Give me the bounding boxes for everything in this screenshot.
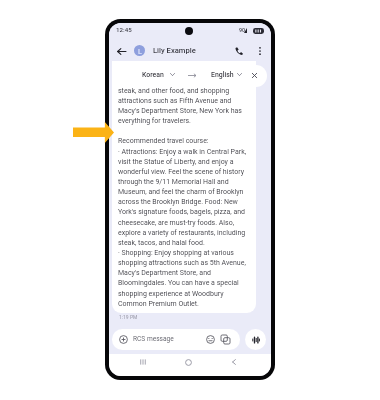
staticText: Macy's Department Store, New York has bbox=[118, 107, 242, 115]
button[interactable]: Voice message bbox=[245, 329, 266, 350]
staticText: Museum, and feel the charm of Brooklyn bbox=[118, 188, 244, 196]
button[interactable]: Home bbox=[178, 352, 198, 372]
staticText: shopping attractions such as 5th Avenue, bbox=[118, 259, 246, 267]
staticText: · Shopping: Enjoy shopping at various bbox=[118, 249, 234, 257]
button[interactable]: Gallery bbox=[221, 335, 231, 345]
button[interactable]: Back bbox=[224, 352, 244, 372]
button[interactable]: More options bbox=[253, 44, 267, 58]
button[interactable]: Lily Example bbox=[153, 46, 196, 55]
button[interactable] bbox=[113, 65, 267, 87]
staticText: visit the Statue of Liberty, and enjoy a bbox=[118, 158, 234, 166]
button[interactable]: Close translation bbox=[249, 70, 260, 81]
button[interactable]: Recent apps bbox=[133, 352, 153, 372]
button[interactable]: Back bbox=[115, 45, 128, 58]
staticText: Recommended travel course: bbox=[118, 137, 209, 145]
staticText: everything for travelers. bbox=[118, 117, 191, 125]
staticText: L bbox=[138, 47, 142, 55]
staticText: through the 9/11 Memorial Hall and bbox=[118, 178, 229, 186]
staticText: attractions such as Fifth Avenue and bbox=[118, 97, 232, 105]
button[interactable]: Emoji bbox=[206, 335, 215, 344]
button[interactable] bbox=[112, 56, 256, 313]
staticText: shopping experience at Woodbury bbox=[118, 290, 224, 298]
staticText: Macy's Department Store, and bbox=[118, 269, 211, 277]
staticText: 1:19 PM bbox=[119, 314, 138, 320]
staticText: explore a variety of restaurants, includ… bbox=[118, 229, 246, 237]
staticText: 12:45 bbox=[116, 26, 132, 33]
staticText: wonderful view. Feel the scene of histor… bbox=[118, 168, 245, 176]
button[interactable]: Contact photo bbox=[134, 45, 145, 56]
button[interactable]: RCS message bbox=[112, 329, 240, 350]
staticText: Common Premium Outlet. bbox=[118, 300, 199, 308]
staticText: across the Brooklyn Bridge. Food: New bbox=[118, 198, 238, 206]
staticText: 90 bbox=[239, 27, 246, 33]
staticText: · Attractions: Enjoy a walk in Central P… bbox=[118, 148, 247, 156]
button[interactable]: Call bbox=[232, 44, 246, 58]
staticText: Bloomingdales. You can have a special bbox=[118, 279, 239, 287]
staticText: steak, and other food, and shopping bbox=[118, 87, 230, 95]
staticText: York's signature foods, bagels, pizza, a… bbox=[118, 208, 246, 216]
staticText: steak, tacos, and halal food. bbox=[118, 239, 205, 247]
button[interactable]: Korean bbox=[142, 71, 164, 79]
button[interactable]: English bbox=[211, 71, 234, 79]
staticText: RCS message bbox=[133, 335, 174, 343]
staticText: cheesecake, are must-try foods. Also, bbox=[118, 219, 235, 227]
